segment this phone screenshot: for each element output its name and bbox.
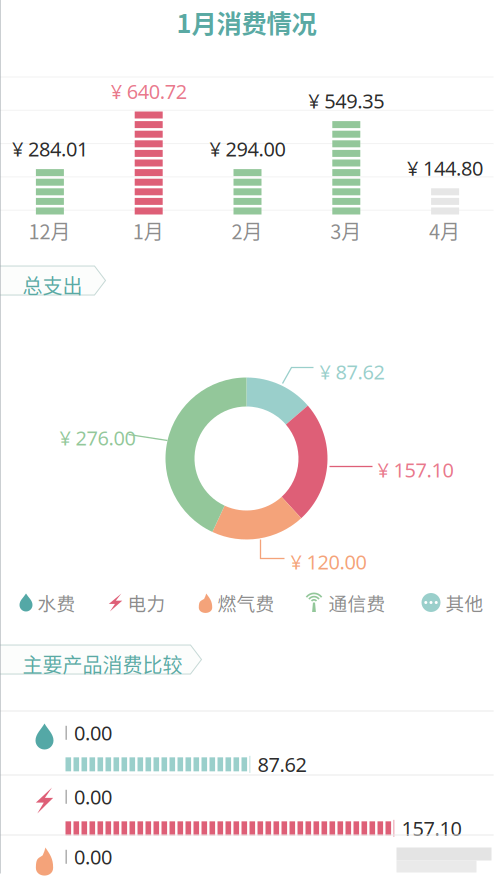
button[interactable]: 0.00	[0, 775, 493, 834]
staticText: 主要产品消费比较	[22, 649, 182, 678]
staticText: 2月	[231, 216, 262, 245]
staticText: 12月	[28, 216, 70, 245]
staticText: 水费	[37, 589, 75, 616]
staticText: 0.00	[74, 719, 112, 746]
staticText: ¥ 549.35	[308, 87, 384, 114]
button[interactable]: 总支出	[0, 265, 493, 295]
staticText: ¥ 120.00	[290, 548, 366, 575]
staticText: 87.62	[257, 751, 306, 778]
staticText: 通信费	[328, 589, 385, 616]
staticText: 1月消费情况	[176, 3, 316, 40]
button[interactable]: 0.00	[0, 711, 493, 774]
staticText: ¥ 284.01	[12, 135, 88, 162]
staticText: ¥ 87.62	[319, 358, 384, 385]
staticText: 其他	[445, 589, 483, 616]
staticText: 157.10	[401, 815, 461, 842]
staticText: 电力	[127, 589, 165, 616]
staticText: ¥ 276.00	[59, 424, 135, 451]
staticText: 3月	[330, 216, 361, 245]
staticText: 1月	[133, 216, 164, 245]
staticText: 4月	[429, 216, 460, 245]
staticText: 0.00	[74, 783, 112, 810]
staticText: ¥ 157.10	[377, 456, 453, 483]
staticText: ¥ 144.80	[407, 155, 483, 181]
staticText: ¥ 294.00	[209, 135, 285, 162]
staticText: 总支出	[22, 270, 82, 299]
button[interactable]: 主要产品消费比较	[0, 644, 493, 674]
button[interactable]: 0.00	[0, 835, 493, 873]
staticText: 0.00	[74, 843, 112, 870]
staticText: ¥ 640.72	[111, 78, 187, 104]
staticText: 燃气费	[217, 589, 274, 616]
